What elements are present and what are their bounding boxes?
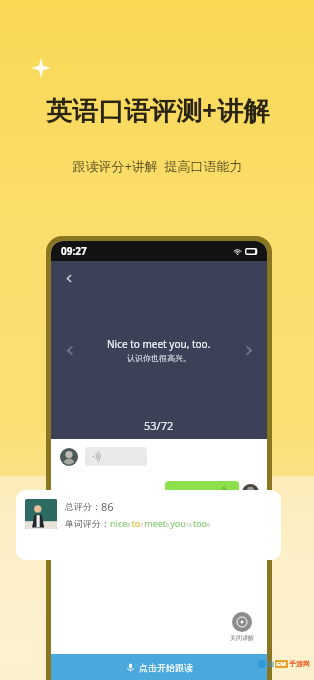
staticText: 53/72 xyxy=(144,418,174,433)
staticText: 认识你也很高兴。 xyxy=(127,353,191,363)
staticText: Nice to meet you, too. xyxy=(107,337,211,351)
staticText: 山 xyxy=(267,659,274,668)
staticText: 关闭讲解 xyxy=(230,634,254,642)
staticText: 英语口语评测+讲解 xyxy=(46,92,269,128)
staticText: 点击开始跟读 xyxy=(139,662,193,673)
button[interactable]: Next sentence xyxy=(235,337,261,363)
button[interactable]: Back xyxy=(60,269,78,287)
staticText: 09:27 xyxy=(61,244,87,258)
button[interactable]: Play my recording xyxy=(165,481,239,503)
staticText: 86 xyxy=(101,499,114,514)
staticText: GM xyxy=(276,660,287,668)
staticText: 手游网 xyxy=(289,659,310,668)
button[interactable]: 总评分： xyxy=(16,490,281,560)
staticText: 跟读评分+讲解 提高口语能力 xyxy=(72,157,243,175)
staticText: 单词评分：nice8 to7 meet9 you10 too9 xyxy=(65,517,266,529)
button[interactable]: Previous sentence xyxy=(57,337,83,363)
staticText: 总评分： xyxy=(65,501,101,512)
button[interactable]: 关闭讲解 xyxy=(230,612,254,642)
button[interactable]: 点击开始跟读 xyxy=(51,654,267,680)
button[interactable]: Play audio xyxy=(85,447,147,466)
